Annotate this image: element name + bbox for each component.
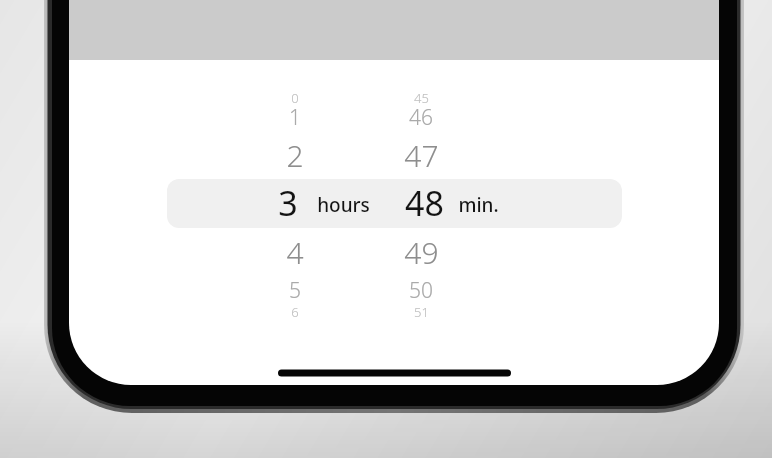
staticText: 3 <box>278 180 298 226</box>
staticText: 4 <box>286 232 304 273</box>
staticText: 46 <box>409 103 433 132</box>
staticText: 51 <box>414 303 429 321</box>
staticText: 50 <box>409 276 433 305</box>
staticText: 5 <box>289 276 301 305</box>
staticText: 47 <box>404 135 439 176</box>
staticText: 48 <box>405 180 444 226</box>
staticText: 0 <box>291 89 299 107</box>
staticText: 6 <box>291 303 299 321</box>
staticText: min. <box>458 192 499 218</box>
button[interactable]: Minutes picker <box>390 80 590 330</box>
button[interactable]: Hours picker <box>200 80 390 330</box>
staticText: hours <box>317 192 370 218</box>
staticText: 49 <box>404 232 439 273</box>
staticText: 1 <box>289 103 301 132</box>
staticText: 45 <box>414 89 429 107</box>
staticText: 2 <box>286 135 304 176</box>
